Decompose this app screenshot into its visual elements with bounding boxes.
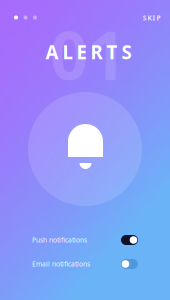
button[interactable]: Email notifications (32, 257, 138, 271)
button[interactable]: Push notifications (32, 233, 138, 247)
button[interactable]: SKIP (138, 12, 168, 24)
staticText: ALERTS (45, 40, 140, 64)
staticText: Email notifications (32, 260, 90, 268)
staticText: Push notifications (32, 236, 87, 244)
staticText: 01 (50, 10, 126, 98)
staticText: SKIP (143, 14, 163, 22)
